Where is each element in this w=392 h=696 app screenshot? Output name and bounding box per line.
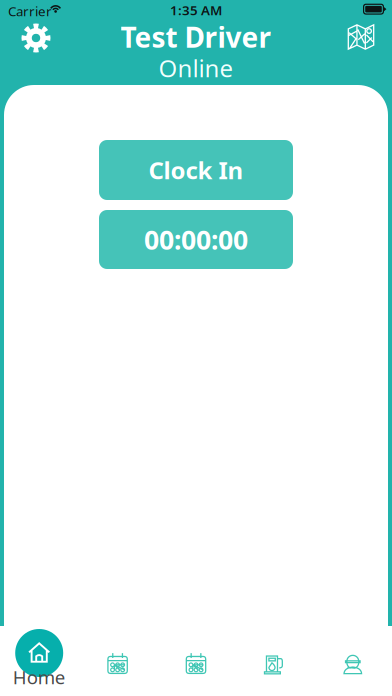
button[interactable]: Fuel [235,641,314,685]
staticText: Carrier [8,2,52,20]
button[interactable]: 00:00:00 [99,210,293,269]
staticText: Online [158,52,233,84]
button[interactable]: Map [339,15,383,59]
staticText: 00:00:00 [144,222,248,257]
button[interactable]: Driver [314,641,392,685]
button[interactable]: Schedule [78,641,157,685]
staticText: Test Driver [120,18,271,56]
button[interactable]: Settings [14,16,58,60]
staticText: Clock In [148,154,243,186]
staticText: 1:35 AM [170,1,222,19]
staticText: Home [13,665,66,689]
button[interactable]: Clock In [99,140,293,200]
button[interactable]: Home [0,616,78,690]
button[interactable]: Calendar [157,641,235,685]
